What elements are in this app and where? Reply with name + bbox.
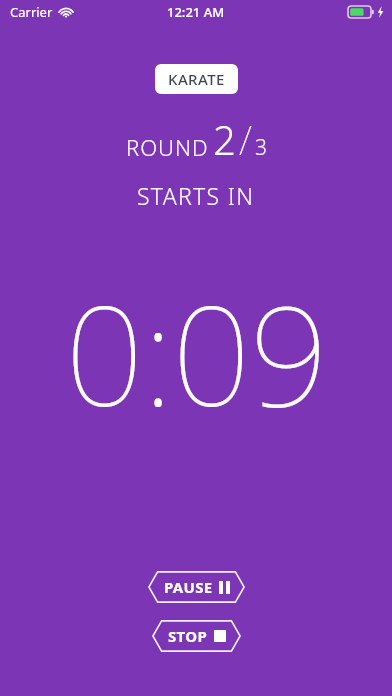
staticText: STOP — [168, 626, 208, 646]
staticText: / — [239, 112, 252, 166]
staticText: 3 — [255, 133, 267, 162]
button[interactable]: KARATE — [155, 64, 238, 94]
staticText: 12:21 AM — [167, 3, 225, 21]
staticText: KARATE — [168, 69, 225, 89]
staticText: PAUSE — [164, 577, 213, 597]
staticText: ROUND — [126, 132, 209, 162]
staticText: 2 — [213, 112, 236, 166]
staticText: 0:09 — [65, 258, 328, 446]
staticText: STARTS IN — [137, 180, 255, 211]
staticText: Carrier — [10, 3, 53, 21]
button[interactable]: Pause — [148, 571, 245, 603]
button[interactable]: Stop — [152, 620, 241, 652]
